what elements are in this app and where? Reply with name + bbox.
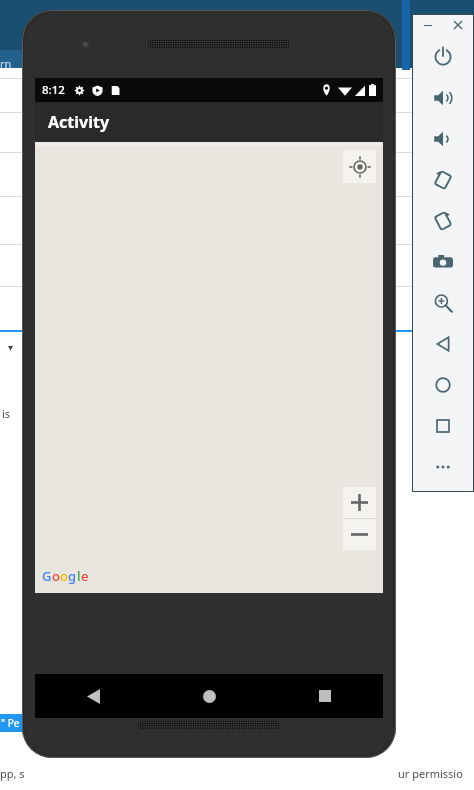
button[interactable]: Power	[412, 36, 474, 77]
button[interactable]: My location	[343, 150, 376, 183]
button[interactable]: Home	[412, 364, 474, 405]
button[interactable]: Back	[35, 674, 151, 718]
button[interactable]: Close	[449, 16, 467, 34]
button[interactable]: Rotate right	[412, 200, 474, 241]
button[interactable]: Recent apps	[267, 674, 383, 718]
button[interactable]: Home	[151, 674, 267, 718]
staticText: o	[60, 567, 68, 585]
button[interactable]: Back	[412, 323, 474, 364]
button[interactable]: Volume up	[412, 77, 474, 118]
staticText: g	[68, 567, 77, 585]
staticText: is	[2, 406, 11, 421]
staticText: e	[81, 567, 89, 585]
staticText: ▾	[8, 342, 14, 354]
button[interactable]: Recent apps	[412, 405, 474, 446]
staticText: 8:12	[42, 82, 65, 98]
staticText: pp, s	[0, 766, 25, 781]
button[interactable]: Take screenshot	[412, 241, 474, 282]
staticText: " Pe	[1, 716, 20, 730]
button[interactable]: Rotate left	[412, 159, 474, 200]
button[interactable]: Minimize	[419, 16, 437, 34]
button[interactable]: Zoom out	[343, 519, 376, 550]
button[interactable]: Volume down	[412, 118, 474, 159]
button[interactable]: More	[412, 446, 474, 487]
staticText: ur permissio	[398, 766, 463, 781]
staticText: rn	[0, 56, 12, 71]
button[interactable]: Zoom in	[343, 487, 376, 518]
staticText: Activity	[48, 111, 110, 133]
button[interactable]: Zoom	[412, 282, 474, 323]
staticText: l	[77, 567, 81, 585]
staticText: o	[52, 567, 60, 585]
staticText: G	[42, 567, 52, 585]
